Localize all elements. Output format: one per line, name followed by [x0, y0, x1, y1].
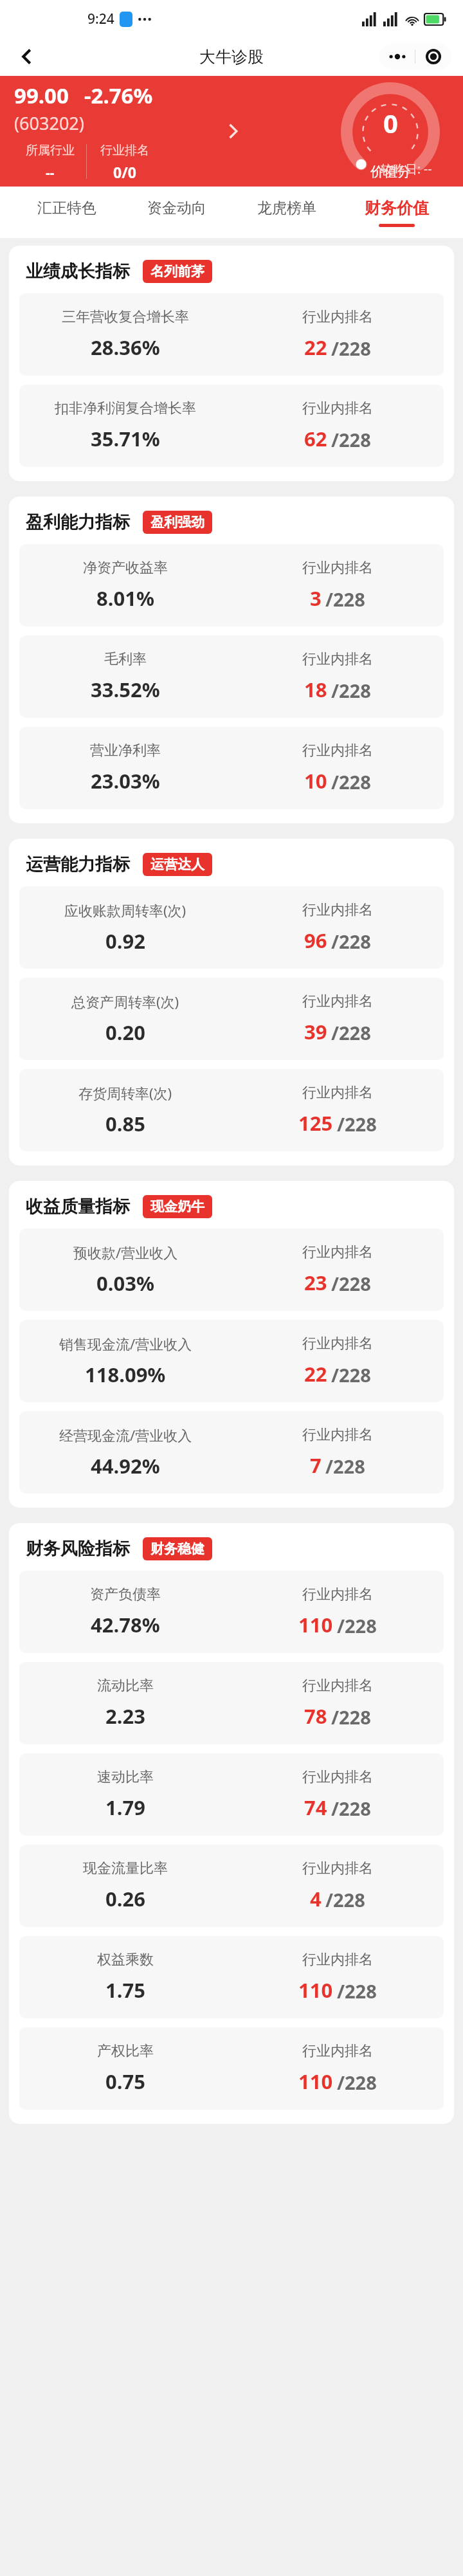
staticText: 0.85: [105, 1110, 145, 1137]
staticText: /228: [331, 1362, 371, 1387]
staticText: /228: [337, 1111, 377, 1137]
staticText: /228: [331, 678, 371, 703]
button[interactable]: 流动比率: [19, 1662, 444, 1744]
staticText: 产权比率: [97, 2042, 154, 2060]
staticText: 资产负债率: [90, 1585, 161, 1603]
staticText: 9:24: [87, 10, 114, 28]
staticText: 现金奶牛: [150, 1198, 204, 1215]
button[interactable]: 扣非净利润复合增长率: [19, 385, 444, 467]
staticText: /228: [331, 1271, 371, 1296]
staticText: 较昨日: --: [381, 161, 432, 178]
button[interactable]: 关闭: [415, 43, 451, 70]
staticText: 22: [304, 334, 327, 361]
staticText: /228: [337, 2070, 377, 2095]
staticText: 龙虎榜单: [257, 199, 316, 217]
staticText: /228: [331, 769, 371, 794]
button[interactable]: 三年营收复合增长率: [19, 293, 444, 376]
staticText: /228: [331, 1796, 371, 1821]
button[interactable]: 销售现金流/营业收入: [19, 1320, 444, 1402]
staticText: 110: [298, 1977, 333, 2004]
staticText: 汇正特色: [37, 199, 96, 217]
button[interactable]: 毛利率: [19, 635, 444, 718]
staticText: (603202): [14, 111, 84, 135]
button[interactable]: 返回: [10, 40, 44, 73]
button[interactable]: 营业净利率: [19, 727, 444, 809]
staticText: /228: [331, 1704, 371, 1730]
staticText: 0.75: [105, 2068, 145, 2095]
staticText: 名列前茅: [150, 263, 204, 280]
staticText: 资金动向: [147, 199, 206, 217]
staticText: /228: [331, 929, 371, 954]
staticText: 3: [310, 585, 322, 612]
staticText: 118.09%: [85, 1361, 166, 1388]
staticText: 速动比率: [97, 1768, 154, 1786]
staticText: /228: [331, 427, 371, 452]
button[interactable]: 资产负债率: [19, 1571, 444, 1653]
staticText: 行业内排名: [302, 308, 373, 326]
button[interactable]: 资金动向: [122, 187, 232, 238]
staticText: 盈利能力指标: [26, 511, 130, 533]
staticText: 行业排名: [100, 143, 149, 158]
staticText: 96: [304, 927, 327, 954]
staticText: 营业净利率: [90, 742, 161, 760]
staticText: 110: [298, 1611, 333, 1638]
button[interactable]: 汇正特色: [12, 187, 122, 238]
button[interactable]: 速动比率: [19, 1753, 444, 1836]
button[interactable]: 预收款/营业收入: [19, 1229, 444, 1311]
staticText: 财务价值: [365, 198, 429, 218]
staticText: 110: [298, 2068, 333, 2095]
staticText: 18: [304, 676, 327, 703]
button[interactable]: 存货周转率(次): [19, 1069, 444, 1151]
button[interactable]: 产权比率: [19, 2027, 444, 2110]
staticText: 23: [304, 1269, 327, 1296]
staticText: 2.23: [105, 1703, 145, 1730]
staticText: 125: [298, 1110, 333, 1137]
staticText: 所属行业: [26, 143, 75, 158]
staticText: 财务风险指标: [26, 1538, 130, 1560]
staticText: 扣非净利润复合增长率: [55, 399, 196, 417]
staticText: 0.03%: [96, 1270, 154, 1297]
staticText: 行业内排名: [302, 399, 373, 417]
staticText: /228: [337, 1978, 377, 2004]
staticText: 行业内排名: [302, 1859, 373, 1877]
staticText: /228: [331, 1020, 371, 1045]
staticText: 0.92: [105, 927, 145, 955]
button[interactable]: 龙虎榜单: [232, 187, 341, 238]
button[interactable]: 更多: [379, 43, 415, 70]
staticText: 44.92%: [91, 1452, 160, 1479]
staticText: 运营达人: [150, 856, 204, 873]
staticText: 78: [304, 1703, 327, 1730]
staticText: 行业内排名: [302, 1677, 373, 1695]
button[interactable]: 净资产收益率: [19, 544, 444, 626]
staticText: 收益质量指标: [26, 1196, 130, 1218]
staticText: 行业内排名: [302, 559, 373, 577]
staticText: 流动比率: [97, 1677, 154, 1695]
staticText: 7: [310, 1452, 322, 1479]
button[interactable]: 应收账款周转率(次): [19, 886, 444, 969]
staticText: 价值分: [370, 163, 411, 180]
staticText: 4: [310, 1885, 322, 1912]
staticText: --: [46, 163, 55, 182]
staticText: 22: [304, 1360, 327, 1387]
button[interactable]: 权益乘数: [19, 1936, 444, 2018]
staticText: 行业内排名: [302, 1951, 373, 1969]
staticText: 行业内排名: [302, 992, 373, 1010]
button[interactable]: 经营现金流/营业收入: [19, 1411, 444, 1494]
staticText: /228: [325, 587, 365, 612]
staticText: 33.52%: [91, 676, 160, 703]
staticText: 10: [304, 767, 327, 794]
button[interactable]: 现金流量比率: [19, 1845, 444, 1927]
button[interactable]: 99.00: [0, 76, 463, 187]
staticText: 行业内排名: [302, 2042, 373, 2060]
staticText: 总资产周转率(次): [71, 992, 179, 1011]
staticText: 0.26: [105, 1885, 145, 1912]
staticText: 行业内排名: [302, 650, 373, 668]
staticText: -2.76%: [84, 81, 153, 110]
button[interactable]: 总资产周转率(次): [19, 978, 444, 1060]
staticText: 行业内排名: [302, 1768, 373, 1786]
staticText: 经营现金流/营业收入: [59, 1425, 192, 1445]
staticText: 净资产收益率: [83, 559, 168, 577]
button[interactable]: 财务价值: [341, 187, 451, 238]
staticText: 行业内排名: [302, 1084, 373, 1102]
staticText: 99.00: [14, 81, 69, 110]
